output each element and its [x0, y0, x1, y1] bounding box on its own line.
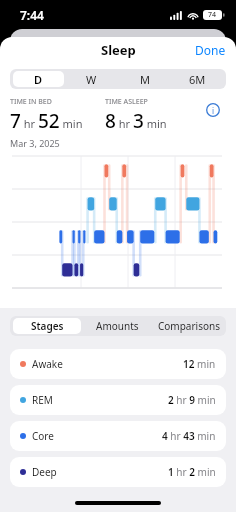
- staticText: Core: [32, 429, 54, 443]
- staticText: D: [34, 72, 43, 87]
- staticText: Comparisons: [158, 319, 220, 333]
- button[interactable]: Done: [185, 38, 236, 62]
- staticText: Deep: [32, 465, 57, 479]
- staticText: 6M: [189, 72, 206, 87]
- button[interactable]: Stages: [13, 318, 81, 334]
- button[interactable]: M: [119, 71, 170, 87]
- staticText: 1 hr 2 min: [168, 465, 216, 479]
- button[interactable]: Awake: [10, 349, 226, 379]
- staticText: 8 hr 3 min: [105, 108, 167, 134]
- button[interactable]: Deep: [10, 457, 226, 487]
- staticText: 74: [208, 10, 217, 20]
- button[interactable]: Amounts: [83, 318, 152, 334]
- staticText: Sleep: [101, 41, 136, 59]
- staticText: 12 min: [183, 357, 216, 371]
- staticText: 7 hr 52 min: [10, 108, 83, 134]
- staticText: Stages: [31, 319, 64, 333]
- staticText: Mar 3, 2025: [10, 137, 60, 149]
- button[interactable]: REM: [10, 385, 226, 415]
- staticText: Amounts: [96, 319, 139, 333]
- staticText: 2 hr 9 min: [168, 393, 216, 407]
- button[interactable]: D: [13, 71, 64, 87]
- staticText: Done: [195, 42, 226, 58]
- staticText: REM: [32, 393, 53, 407]
- staticText: Awake: [32, 357, 63, 371]
- button[interactable]: 6M: [172, 71, 223, 87]
- button[interactable]: W: [66, 71, 117, 87]
- staticText: i: [212, 105, 215, 116]
- staticText: 7:44: [20, 7, 44, 23]
- staticText: W: [86, 72, 97, 87]
- button[interactable]: Comparisons: [154, 318, 223, 334]
- button[interactable]: Core: [10, 421, 226, 451]
- staticText: 4 hr 43 min: [162, 429, 216, 443]
- staticText: TIME IN BED: [10, 97, 52, 107]
- staticText: TIME ASLEEP: [105, 97, 148, 107]
- staticText: M: [140, 72, 150, 87]
- button[interactable]: Info: [200, 97, 226, 123]
